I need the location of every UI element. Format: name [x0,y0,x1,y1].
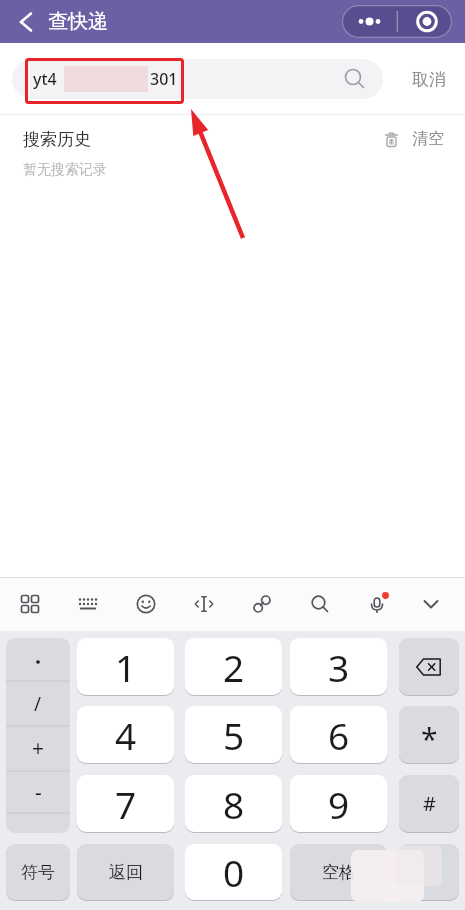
staticText: 7 [115,779,137,829]
button[interactable] [399,844,459,900]
staticText: # [423,790,436,817]
button[interactable]: 9 [290,775,387,832]
button[interactable]: 8 [185,775,282,832]
button[interactable]: 6 [290,706,387,763]
button[interactable] [16,590,44,618]
button[interactable] [342,5,452,38]
button[interactable] [6,638,70,833]
staticText: 3 [328,642,350,692]
staticText: * [421,718,438,759]
button[interactable] [12,59,383,99]
staticText: 符号 [21,862,55,883]
button[interactable] [417,590,445,618]
button[interactable]: 1 [77,638,174,695]
button[interactable] [306,590,334,618]
button[interactable] [132,590,160,618]
button[interactable] [190,590,218,618]
staticText: 1 [115,642,137,692]
button[interactable] [248,590,276,618]
button[interactable]: 4 [77,706,174,763]
button[interactable]: 0 [185,844,282,900]
staticText: 5 [223,710,245,760]
button[interactable] [364,590,392,618]
staticText: 2 [223,642,245,692]
button[interactable]: 符号 [6,844,70,900]
button[interactable]: # [399,775,459,832]
staticText: 查快递 [48,9,108,34]
button[interactable]: 3 [290,638,387,695]
staticText: 暂无搜索记录 [23,161,107,179]
staticText: + [32,734,45,763]
staticText: - [35,778,42,807]
button[interactable]: 空格 [290,844,387,900]
staticText: 4 [115,710,137,760]
staticText: / [34,691,42,717]
button[interactable]: 5 [185,706,282,763]
staticText: 301 [150,68,178,90]
staticText: 搜索历史 [23,129,91,150]
staticText: 清空 [412,129,444,149]
button[interactable]: * [399,706,459,763]
button[interactable] [399,638,459,695]
staticText: 取消 [412,69,446,90]
staticText: 空格 [322,862,356,883]
staticText: yt4 [33,68,57,90]
staticText: 8 [223,779,245,829]
button[interactable] [74,590,102,618]
staticText: 0 [223,847,245,897]
staticText: 返回 [109,862,143,883]
staticText: 6 [328,710,350,760]
staticText: 9 [328,779,350,829]
button[interactable]: 7 [77,775,174,832]
button[interactable]: 返回 [77,844,174,900]
button[interactable]: 清空 [404,126,452,152]
button[interactable]: 2 [185,638,282,695]
button[interactable]: 取消 [403,59,455,99]
button[interactable] [8,5,44,39]
